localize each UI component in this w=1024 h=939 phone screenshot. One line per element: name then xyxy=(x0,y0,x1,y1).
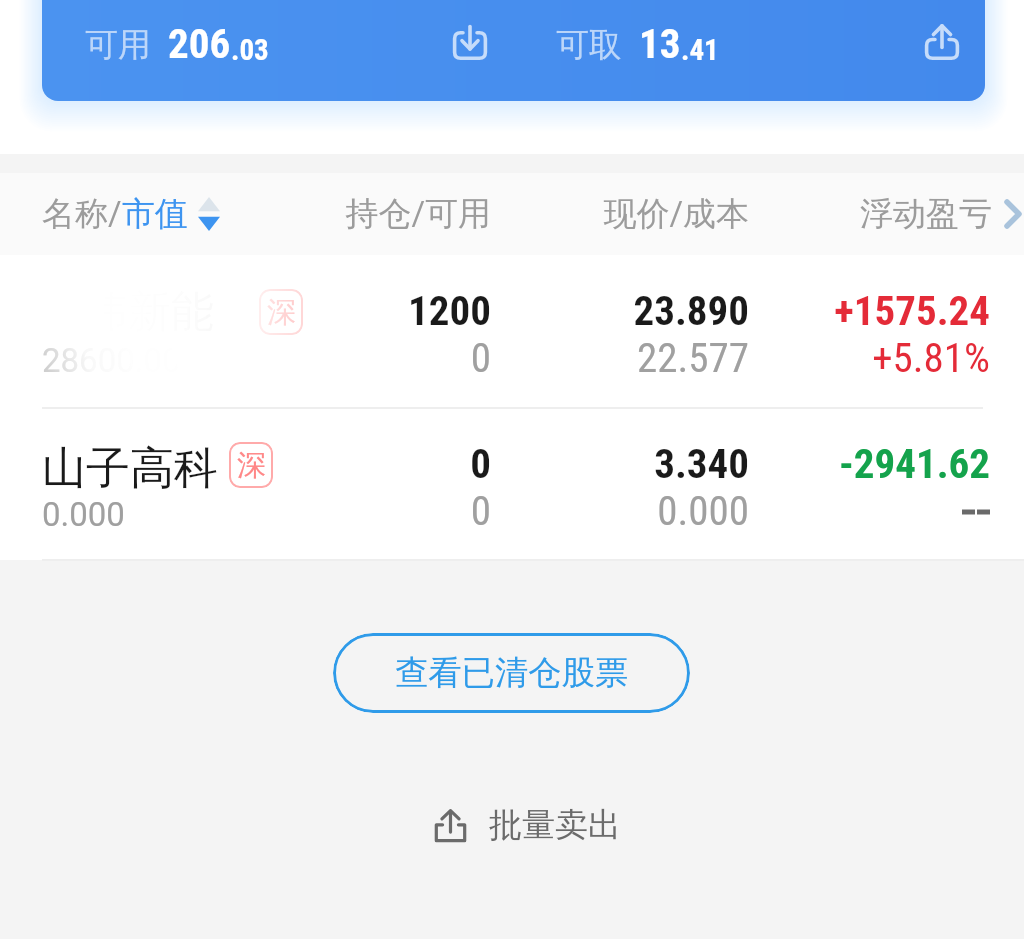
staticText: -2941.62 xyxy=(730,440,990,488)
staticText: +5.81% xyxy=(730,334,990,382)
staticText: .03 xyxy=(231,33,269,67)
button[interactable]: 查看已清仓股票 xyxy=(333,633,690,713)
button[interactable] xyxy=(42,0,985,101)
staticText: 浮动盈亏 xyxy=(860,193,992,235)
staticText: 市值 xyxy=(122,193,188,235)
staticText: 查看已清仓股票 xyxy=(395,652,629,694)
staticText: 1200 xyxy=(231,287,491,335)
staticText: 23.890 xyxy=(489,287,749,335)
staticText: 持仓/可用 xyxy=(291,193,491,235)
staticText: .41 xyxy=(681,33,719,67)
staticText: 山子高科 xyxy=(42,441,218,496)
staticText: 22.577 xyxy=(489,334,749,382)
staticText: 3.340 xyxy=(489,440,749,488)
staticText: 深 xyxy=(267,294,296,331)
staticText: 0.000 xyxy=(489,487,749,535)
staticText: +1575.24 xyxy=(730,287,990,335)
button[interactable]: 取出资金 xyxy=(916,15,968,67)
staticText: 可取 xyxy=(556,24,622,66)
staticText: 现价/成本 xyxy=(549,193,749,235)
staticText: 206 xyxy=(168,20,231,68)
staticText: 批量卖出 xyxy=(489,804,621,846)
staticText: 深 xyxy=(237,447,266,484)
button[interactable]: 存入资金 xyxy=(444,15,496,67)
staticText: 13 xyxy=(639,20,681,68)
button[interactable]: 浮动盈亏 xyxy=(860,193,1022,235)
staticText: 28600.000 xyxy=(42,341,200,380)
button[interactable]: 名称/ xyxy=(42,193,220,235)
button[interactable]: 批量卖出 xyxy=(422,795,633,855)
staticText: 0 xyxy=(231,334,491,382)
staticText: 0.000 xyxy=(42,495,125,534)
staticText: 可用 xyxy=(85,24,151,66)
staticText: 名称/ xyxy=(42,193,122,235)
staticText: 0 xyxy=(231,440,491,488)
staticText: 0 xyxy=(231,487,491,535)
